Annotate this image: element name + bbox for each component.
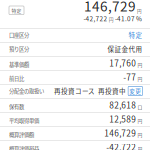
button[interactable]: 保有数 [0, 98, 150, 112]
staticText: 146,729 [84, 0, 136, 15]
button[interactable]: 概算評価損益 [0, 140, 150, 150]
staticText: 特定 [128, 30, 142, 40]
staticText: 円 [137, 145, 142, 150]
staticText: 平均取得単価 [9, 117, 39, 124]
staticText: 概算評価損益 [9, 145, 39, 150]
button[interactable]: 口座区分 [0, 28, 150, 42]
staticText: 146,729 [104, 127, 136, 139]
staticText: 円 [109, 16, 114, 23]
staticText: 17,760 [109, 57, 136, 69]
button[interactable]: 分配金の取扱い [0, 84, 150, 98]
button[interactable]: 平均取得単価 [0, 112, 150, 126]
button[interactable]: 基準価額 [0, 56, 150, 70]
staticText: 82,618 [109, 99, 136, 111]
staticText: -41.07 % [115, 14, 142, 23]
staticText: -42,722 [84, 14, 108, 23]
staticText: 分配金の取扱い [9, 87, 44, 95]
staticText: 12,589 [109, 113, 136, 125]
button[interactable]: 特定 [9, 6, 24, 15]
staticText: 預り区分 [9, 45, 29, 53]
staticText: 円 [137, 75, 142, 82]
staticText: 基準価額 [9, 61, 29, 68]
staticText: 再投資コース [54, 86, 95, 96]
staticText: 変更 [129, 87, 141, 95]
staticText: 円 [137, 61, 142, 68]
staticText: -77 [123, 71, 136, 83]
button[interactable]: 概算評価額 [0, 126, 150, 140]
button[interactable]: 前日比 [0, 70, 150, 84]
staticText: 円 [137, 131, 142, 138]
staticText: 円 [137, 117, 142, 124]
staticText: 特定 [11, 7, 21, 14]
staticText: 円 [137, 8, 142, 14]
staticText: 保証金代用 [107, 44, 142, 54]
button[interactable]: 預り区分 [0, 42, 150, 56]
staticText: 口座区分 [9, 31, 29, 39]
staticText: -42,722 [106, 141, 136, 150]
staticText: 再投資中 [98, 86, 126, 96]
staticText: 口 [137, 103, 142, 110]
staticText: 保有数 [9, 103, 24, 110]
staticText: 概算評価額 [9, 131, 34, 138]
staticText: 前日比 [9, 75, 24, 82]
